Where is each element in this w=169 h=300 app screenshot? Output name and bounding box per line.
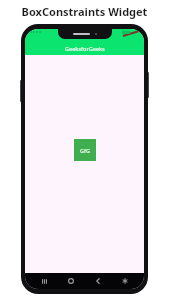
button[interactable]: Home <box>63 273 79 289</box>
button[interactable]: Recent apps <box>36 273 52 289</box>
button[interactable]: GfG <box>74 139 96 161</box>
button[interactable]: Back <box>90 273 106 289</box>
staticText: GeeksforGeeks <box>65 45 105 52</box>
staticText: BoxConstraints Widget <box>0 4 169 19</box>
staticText: GfG <box>80 147 90 154</box>
button[interactable]: Assistant <box>117 273 133 289</box>
